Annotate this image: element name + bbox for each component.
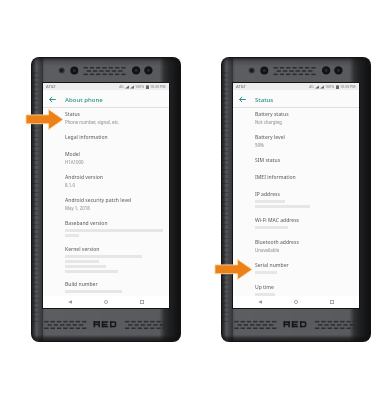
button[interactable]: Home [100,296,112,308]
button[interactable]: Bluetooth address [233,239,359,262]
button[interactable]: Recent apps [326,296,338,308]
staticText: SIM status [255,157,281,164]
staticText: Baseband version [65,220,108,227]
staticText: May 1, 2018 [65,205,90,211]
button[interactable]: Legal information [43,134,169,151]
staticText: Status [65,111,81,118]
staticText: 10:30 PM [340,84,356,89]
button[interactable]: Kernel version [43,246,169,281]
staticText: 8.1.0 [65,182,75,188]
button[interactable]: Model [43,151,169,174]
staticText: H1A1000 [65,159,84,165]
staticText: Not charging [255,119,283,125]
button[interactable]: Navigate up [46,93,58,105]
staticText: 4G [119,84,124,89]
button[interactable]: Baseband version [43,220,169,246]
button[interactable]: Android version [43,174,169,197]
button[interactable]: Recent apps [136,296,148,308]
staticText: Unavailable [255,247,280,253]
staticText: Bluetooth address [255,239,299,246]
staticText: IP address [255,191,280,198]
staticText: 100% [135,84,145,89]
other: Serial number callout [215,259,252,280]
staticText: 4G [309,84,314,89]
button[interactable]: IMEI information [233,174,359,191]
button[interactable]: Up time [233,284,359,296]
button[interactable]: Status [43,111,169,134]
staticText: Model [65,151,80,158]
button[interactable]: Android security patch level [43,197,169,220]
staticText: AT&T [236,84,246,90]
staticText: AT&T [46,84,56,90]
staticText: Android security patch level [65,197,132,204]
staticText: Kernel version [65,246,100,253]
staticText: Build number [65,281,98,288]
staticText: 100% [325,84,335,89]
button[interactable]: Navigate up [236,93,248,105]
button[interactable]: Back [254,296,266,308]
button[interactable]: Battery status [233,111,359,134]
staticText: Status [255,95,274,103]
button[interactable]: Build number [43,281,169,296]
staticText: Up time [255,284,274,291]
staticText: Serial number [255,262,289,269]
button[interactable]: Home [290,296,302,308]
staticText: Legal information [65,134,108,141]
staticText: 59% [255,142,264,148]
staticText: Battery status [255,111,289,118]
staticText: About phone [65,95,103,103]
staticText: Battery level [255,134,285,141]
button[interactable]: Wi-Fi MAC address [233,217,359,239]
staticText: Wi-Fi MAC address [255,217,299,224]
button[interactable]: SIM status [233,157,359,174]
button[interactable]: Battery level [233,134,359,157]
button[interactable]: IP address [233,191,359,217]
button[interactable]: Serial number [233,262,359,284]
staticText: Android version [65,174,103,181]
staticText: IMEI information [255,174,296,181]
staticText: 10:30 PM [150,84,166,89]
button[interactable]: Back [64,296,76,308]
other: Status callout [26,109,63,130]
staticText: Phone number, signal, etc. [65,119,120,125]
